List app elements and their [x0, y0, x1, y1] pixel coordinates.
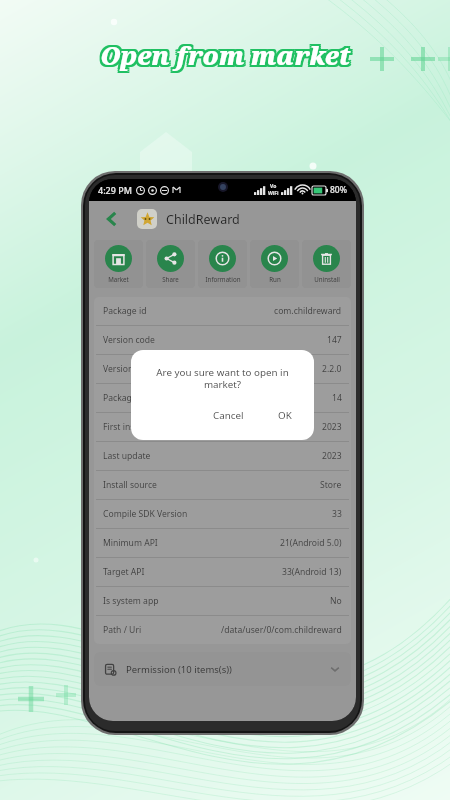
staticText: Uninstall — [314, 275, 340, 283]
staticText: 4:29 PM — [98, 184, 132, 196]
button[interactable]: Package size — [94, 384, 351, 412]
staticText: Open from market — [102, 40, 353, 74]
staticText: Cancel — [213, 409, 244, 422]
staticText: com.childreward — [274, 305, 342, 317]
staticText: Open from market — [102, 36, 353, 70]
button[interactable]: Install source — [94, 471, 351, 499]
staticText: Open from market — [100, 40, 351, 74]
staticText: Open from market — [98, 40, 349, 74]
staticText: Package id — [103, 305, 147, 317]
button[interactable]: Information — [198, 240, 247, 288]
staticText: 80% — [330, 184, 347, 196]
staticText: Path / Uri — [103, 624, 142, 636]
staticText: Version code — [103, 334, 155, 346]
button[interactable]: Run — [250, 240, 299, 288]
staticText: Version Name — [103, 363, 160, 375]
staticText: Open from market — [100, 38, 351, 72]
staticText: /data/user/0/com.childreward — [221, 624, 342, 636]
staticText: Open from market — [98, 38, 349, 72]
staticText: Share — [162, 275, 179, 283]
button[interactable]: Version code — [94, 326, 351, 354]
button[interactable]: First install — [94, 413, 351, 441]
button[interactable]: Cancel — [205, 405, 252, 426]
staticText: 33(Android 13) — [282, 566, 342, 578]
staticText: Permission (10 items(s)) — [126, 663, 232, 676]
staticText: 2.2.0 — [322, 363, 342, 375]
staticText: Open from market — [100, 36, 351, 70]
staticText: ChildReward — [166, 211, 240, 228]
button[interactable]: Back — [99, 206, 125, 232]
staticText: Information — [205, 275, 241, 283]
staticText: 14 — [332, 392, 342, 404]
staticText: 21(Android 5.0) — [280, 537, 342, 549]
staticText: 2023 — [322, 421, 342, 433]
button[interactable]: Compile SDK Version — [94, 500, 351, 528]
staticText: Minimum API — [103, 537, 158, 549]
staticText: Compile SDK Version — [103, 508, 188, 520]
button[interactable]: Market — [94, 240, 143, 288]
staticText: No — [330, 595, 342, 607]
staticText: First install — [103, 421, 147, 433]
staticText: Vo — [270, 183, 277, 190]
button[interactable]: Permission (10 items(s)) — [94, 652, 351, 686]
staticText: Open from market — [102, 38, 353, 72]
staticText: Are you sure want to open in market? — [145, 366, 300, 391]
staticText: Open from market — [98, 36, 349, 70]
staticText: Store — [320, 479, 342, 491]
staticText: OK — [278, 409, 292, 422]
staticText: 33 — [332, 508, 342, 520]
button[interactable]: Minimum API — [94, 529, 351, 557]
button[interactable]: Target API — [94, 558, 351, 586]
button[interactable]: Uninstall — [302, 240, 351, 288]
staticText: 2023 — [322, 450, 342, 462]
staticText: Last update — [103, 450, 151, 462]
staticText: Market — [108, 275, 129, 283]
staticText: Install source — [103, 479, 157, 491]
button[interactable]: Share — [146, 240, 195, 288]
staticText: 147 — [327, 334, 342, 346]
staticText: Target API — [103, 566, 145, 578]
button[interactable]: Last update — [94, 442, 351, 470]
button[interactable]: Package id — [94, 297, 351, 325]
button[interactable]: Is system app — [94, 587, 351, 615]
staticText: Package size — [103, 392, 155, 404]
staticText: Is system app — [103, 595, 159, 607]
staticText: Run — [269, 275, 281, 283]
button[interactable]: OK — [270, 405, 300, 426]
button[interactable]: Version Name — [94, 355, 351, 383]
staticText: WiFi — [268, 190, 279, 197]
button[interactable]: Path / Uri — [94, 616, 351, 644]
